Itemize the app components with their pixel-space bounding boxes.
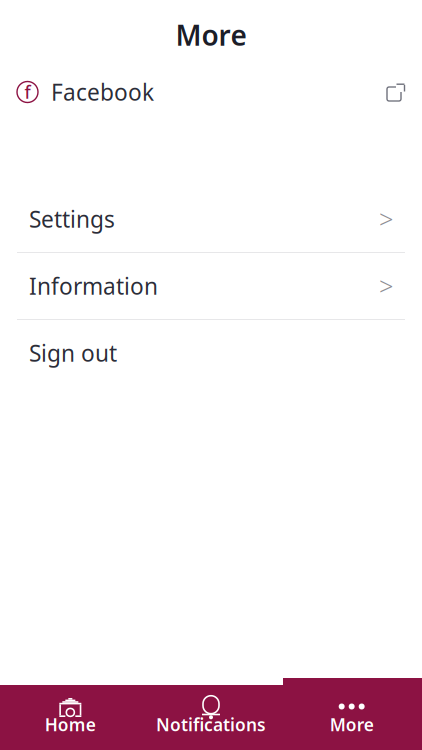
staticText: More bbox=[175, 16, 246, 54]
staticText: More bbox=[330, 713, 374, 736]
button[interactable]: Settings bbox=[0, 186, 422, 252]
staticText: > bbox=[379, 202, 393, 236]
button[interactable]: Sign out bbox=[0, 320, 422, 386]
staticText: Information bbox=[29, 271, 158, 301]
button[interactable]: f bbox=[0, 70, 422, 114]
button[interactable]: More bbox=[281, 685, 422, 750]
staticText: > bbox=[379, 269, 393, 303]
staticText: Home bbox=[45, 713, 96, 736]
button[interactable]: Notifications bbox=[141, 685, 281, 750]
staticText: Sign out bbox=[29, 338, 117, 368]
button[interactable]: Information bbox=[0, 253, 422, 319]
staticText: Notifications bbox=[156, 713, 266, 736]
staticText: Settings bbox=[29, 204, 115, 234]
staticText: Facebook bbox=[51, 77, 154, 107]
button[interactable]: Home bbox=[0, 685, 141, 750]
staticText: f bbox=[24, 80, 30, 103]
